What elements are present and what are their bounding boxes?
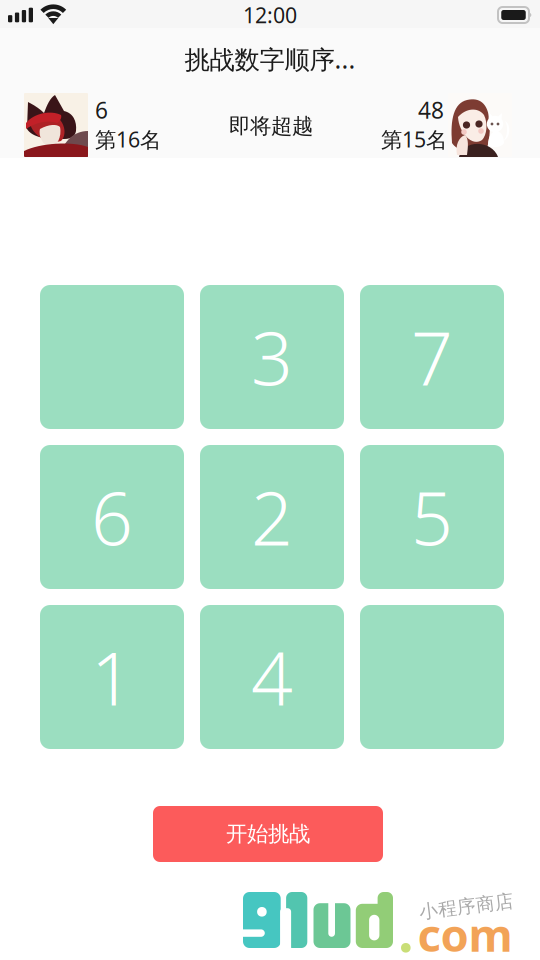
staticText: 6 [91, 468, 133, 566]
staticText: 5 [411, 468, 453, 566]
button[interactable]: 6 [24, 93, 161, 157]
button[interactable]: 3 [200, 285, 344, 429]
staticText: 第16名 [95, 125, 161, 153]
button[interactable]: 7 [360, 285, 504, 429]
staticText: 48 [418, 95, 444, 125]
staticText: 6 [95, 95, 108, 125]
button[interactable]: 4 [200, 605, 344, 749]
staticText: 小程序商店 [419, 895, 514, 918]
button[interactable]: 48 [381, 93, 512, 157]
staticText: com [417, 904, 512, 960]
button[interactable]: 开始挑战 [153, 806, 383, 862]
button[interactable] [360, 605, 504, 749]
button[interactable]: 1 [40, 605, 184, 749]
staticText: 2 [251, 468, 293, 566]
button[interactable]: 5 [360, 445, 504, 589]
button[interactable]: 2 [200, 445, 344, 589]
staticText: 4 [251, 628, 293, 726]
staticText: 12:00 [243, 1, 297, 29]
staticText: 7 [411, 308, 453, 406]
staticText: 挑战数字顺序... [184, 42, 355, 76]
staticText: 开始挑战 [226, 821, 310, 847]
staticText: 即将超越 [229, 113, 313, 139]
staticText: 1 [91, 628, 133, 726]
staticText: 第15名 [381, 125, 447, 153]
staticText: 3 [251, 308, 293, 406]
button[interactable]: 6 [40, 445, 184, 589]
button[interactable] [40, 285, 184, 429]
